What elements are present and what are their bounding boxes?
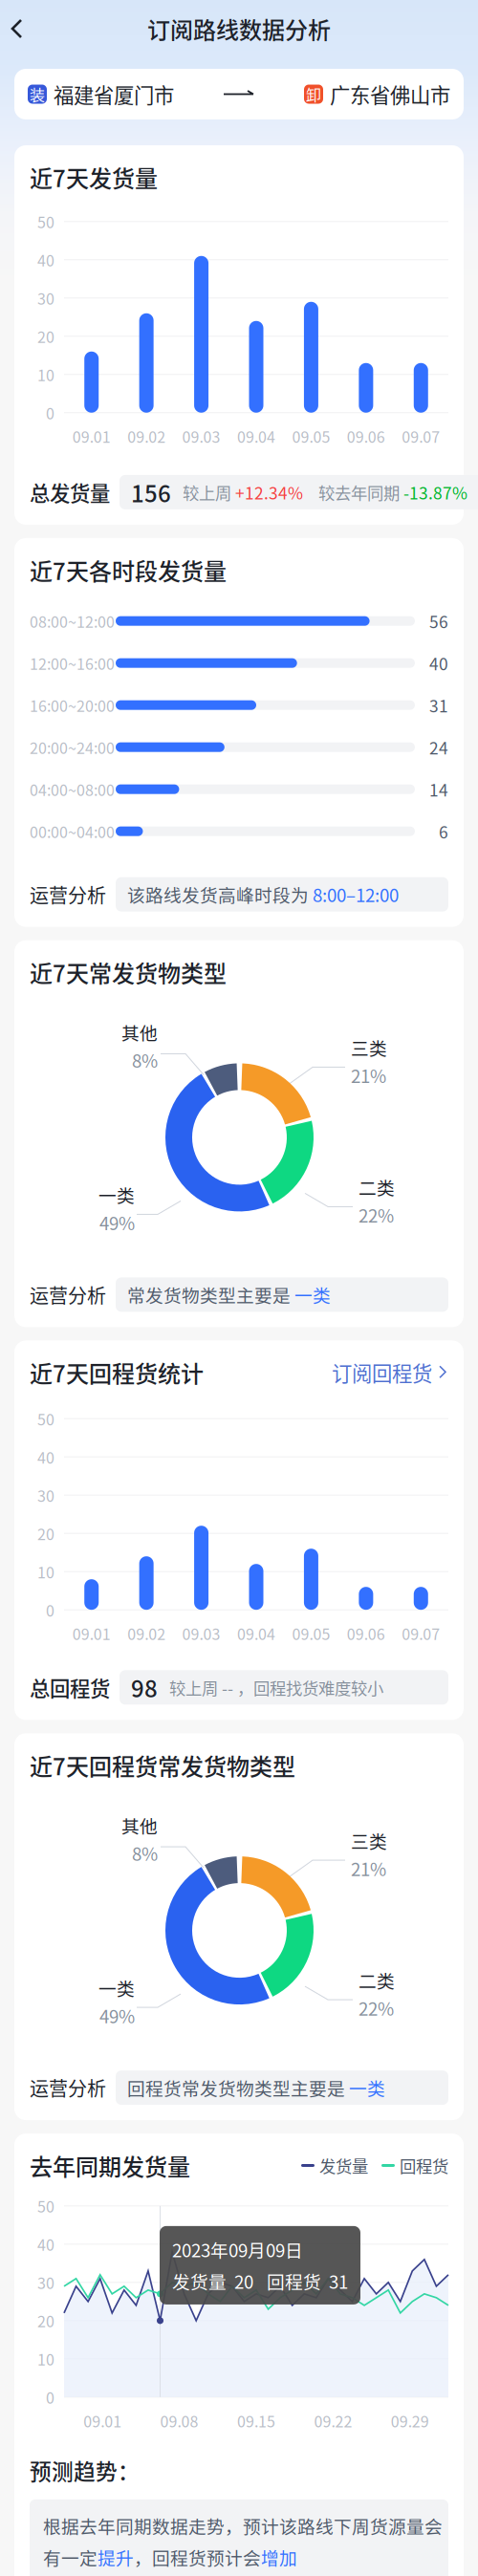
staticText: 49% <box>99 2003 135 2028</box>
staticText: 98 <box>131 1671 158 1704</box>
staticText: 09.07 <box>402 1622 440 1644</box>
staticText: 近7天各时段发货量 <box>30 553 227 587</box>
staticText: 09.05 <box>292 425 330 447</box>
staticText: 发货量 <box>319 2153 368 2177</box>
staticText: 增加 <box>261 2544 297 2570</box>
staticText: 09.06 <box>347 1622 385 1644</box>
staticText: 09.15 <box>237 2409 275 2432</box>
staticText: 09.03 <box>182 1622 220 1644</box>
staticText: 装 <box>30 83 45 105</box>
staticText: 2023年09月09日 <box>172 2236 303 2262</box>
staticText: 其他 <box>121 1812 158 1838</box>
staticText: 56 <box>429 609 448 633</box>
staticText: 近7天回程货统计 <box>30 1356 204 1389</box>
staticText: 回程货常发货物类型主要是 <box>127 2075 349 2101</box>
staticText: 09.29 <box>391 2409 429 2432</box>
staticText: 较上周 <box>183 480 231 504</box>
staticText: 卸 <box>306 83 321 105</box>
staticText: 该路线发货高峰时段为 <box>127 881 313 907</box>
staticText: 较上周 -- ，回程找货难度较小 <box>169 1675 383 1699</box>
staticText: ，回程货预计会 <box>134 2544 261 2570</box>
button[interactable]: 返回 <box>0 7 44 51</box>
staticText: 运营分析 <box>30 2074 106 2102</box>
staticText: 二类 <box>358 1967 395 1993</box>
staticText: 总回程货 <box>30 1673 110 1702</box>
staticText: 一类 <box>98 1975 135 2001</box>
staticText: 156 <box>131 476 171 509</box>
button[interactable]: 订阅回程货 <box>332 1360 448 1385</box>
staticText: 发货量 20 <box>172 2268 253 2294</box>
staticText: 09.06 <box>347 425 385 447</box>
staticText: 09.01 <box>72 425 111 447</box>
staticText: 30 <box>37 287 54 309</box>
staticText: 近7天发货量 <box>30 161 158 194</box>
staticText: 12:00~16:00 <box>30 652 115 674</box>
staticText: 根据去年同期数据走势，预计该路线下周货源量会 <box>43 2513 443 2539</box>
staticText: 20:00~24:00 <box>30 736 115 758</box>
staticText: 订阅路线数据分析 <box>147 12 331 45</box>
staticText: 常发货物类型主要是 <box>127 1282 294 1307</box>
staticText: 10 <box>37 1561 54 1583</box>
staticText: 6 <box>439 819 448 843</box>
staticText: 20 <box>37 2310 54 2332</box>
staticText: 14 <box>429 777 448 801</box>
staticText: 09.02 <box>127 1622 165 1644</box>
staticText: 总发货量 <box>30 477 110 507</box>
staticText: 10 <box>37 2348 54 2370</box>
staticText: 20 <box>37 325 54 347</box>
staticText: 09.22 <box>314 2409 352 2432</box>
staticText: 09.07 <box>402 425 440 447</box>
staticText: +12.34% <box>235 480 303 504</box>
staticText: 20 <box>37 1522 54 1544</box>
staticText: 09.05 <box>292 1622 330 1644</box>
staticText: 运营分析 <box>30 1281 106 1308</box>
staticText: 09.02 <box>127 425 165 447</box>
staticText: 31 <box>429 693 448 717</box>
staticText: 三类 <box>351 1035 387 1060</box>
staticText: 40 <box>37 1446 54 1468</box>
staticText: 8% <box>132 1840 158 1866</box>
staticText: 16:00~20:00 <box>30 694 115 716</box>
staticText: 40 <box>429 651 448 675</box>
staticText: 50 <box>37 210 54 233</box>
staticText: 广东省佛山市 <box>330 79 450 109</box>
staticText: 50 <box>37 1408 54 1430</box>
staticText: 近7天常发货物类型 <box>30 956 227 989</box>
staticText: 其他 <box>121 1019 158 1045</box>
staticText: 0 <box>46 1599 54 1621</box>
staticText: 二类 <box>358 1174 395 1200</box>
staticText: 预测趋势： <box>30 2455 140 2486</box>
staticText: 有一定 <box>43 2544 98 2570</box>
staticText: 三类 <box>351 1828 387 1853</box>
staticText: 08:00~12:00 <box>30 610 115 632</box>
staticText: 09.01 <box>72 1622 111 1644</box>
staticText: 04:00~08:00 <box>30 778 115 800</box>
staticText: 09.04 <box>237 1622 275 1644</box>
staticText: 0 <box>46 2386 54 2408</box>
staticText: 30 <box>37 2271 54 2294</box>
staticText: 运营分析 <box>30 881 106 908</box>
staticText: 提升 <box>98 2544 134 2570</box>
staticText: 24 <box>429 735 448 759</box>
staticText: 50 <box>37 2195 54 2217</box>
staticText: 21% <box>351 1062 386 1088</box>
staticText: 09.04 <box>237 425 275 447</box>
staticText: 订阅回程货 <box>332 1358 432 1387</box>
staticText: 回程货 <box>400 2153 448 2177</box>
staticText: 09.08 <box>160 2409 198 2432</box>
staticText: 22% <box>358 1202 394 1228</box>
staticText: 较去年同期 <box>318 480 400 504</box>
staticText: 22% <box>358 1995 394 2021</box>
staticText: 0 <box>46 402 54 424</box>
staticText: 8% <box>132 1047 158 1073</box>
staticText: 去年同期发货量 <box>30 2149 190 2182</box>
staticText: 21% <box>351 1855 386 1881</box>
staticText: 回程货 31 <box>267 2268 348 2294</box>
staticText: 40 <box>37 2233 54 2255</box>
staticText: 8:00–12:00 <box>313 881 399 907</box>
staticText: 09.01 <box>83 2409 122 2432</box>
staticText: 09.03 <box>182 425 220 447</box>
staticText: 一类 <box>349 2075 385 2101</box>
staticText: 40 <box>37 249 54 271</box>
staticText: 一类 <box>294 1282 331 1307</box>
